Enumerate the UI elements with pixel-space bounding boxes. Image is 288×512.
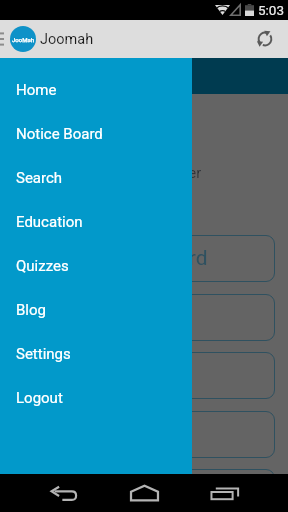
staticText: Welcome to Joomah Reader xyxy=(19,165,202,182)
button[interactable]: Blog xyxy=(0,288,192,332)
staticText: Quizzes xyxy=(16,257,69,275)
staticText: Settings xyxy=(16,345,71,363)
staticText: Notice Board xyxy=(16,125,103,143)
staticText: Blog xyxy=(126,480,168,505)
staticText: 5:03 xyxy=(258,2,285,18)
staticText: Blog xyxy=(16,301,46,319)
button[interactable]: Education xyxy=(0,200,192,244)
staticText: Notice Board xyxy=(86,246,208,271)
button[interactable]: Notice Board xyxy=(13,235,275,282)
button[interactable]: Refresh xyxy=(256,30,274,48)
button[interactable]: Search xyxy=(0,156,192,200)
staticText: Joomah xyxy=(40,31,94,48)
button[interactable]: Quizzes xyxy=(13,411,275,458)
button[interactable]: Blog xyxy=(13,469,275,512)
button[interactable]: Notice Board xyxy=(0,112,192,156)
button[interactable]: Quizzes xyxy=(0,244,192,288)
staticText: Education xyxy=(100,363,194,388)
button[interactable]: Home xyxy=(0,68,192,112)
button[interactable]: Settings xyxy=(0,332,192,376)
button[interactable]: Search xyxy=(13,294,275,341)
button[interactable]: Back xyxy=(45,474,83,512)
staticText: Search xyxy=(16,169,63,187)
button[interactable]: Education xyxy=(13,352,275,399)
button[interactable]: Recents xyxy=(205,474,243,512)
staticText: Home xyxy=(16,81,57,99)
button[interactable]: Open navigation drawer xyxy=(0,29,4,49)
staticText: JooMah xyxy=(12,36,34,43)
staticText: Logout xyxy=(16,389,63,407)
staticText: Education xyxy=(16,213,83,231)
button[interactable]: Home xyxy=(125,474,163,512)
button[interactable]: Logout xyxy=(0,376,192,420)
